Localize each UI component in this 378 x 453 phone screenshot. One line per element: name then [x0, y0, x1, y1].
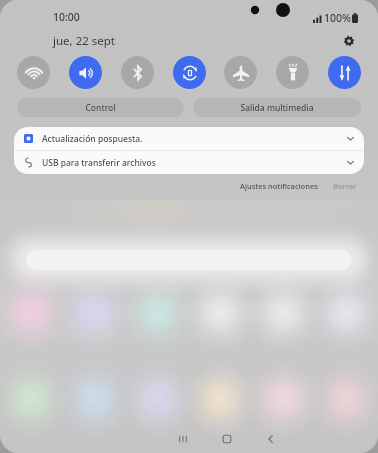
- button[interactable]: Recents: [166, 426, 200, 452]
- staticText: Borrar: [333, 181, 357, 191]
- button[interactable]: Bluetooth: [121, 56, 154, 89]
- button[interactable]: Control: [17, 98, 184, 117]
- staticText: 10:00: [53, 10, 80, 24]
- staticText: Actualización pospuesta.: [42, 133, 346, 145]
- staticText: Salida multimedia: [240, 102, 314, 114]
- staticText: Ajustes notificaciones: [240, 181, 318, 191]
- button[interactable]: Flashlight: [276, 56, 309, 89]
- button[interactable]: Ajustes notificaciones: [237, 179, 321, 193]
- button[interactable]: Mobile data: [328, 56, 361, 89]
- button[interactable]: Sound: [69, 56, 102, 89]
- button[interactable]: Salida multimedia: [193, 98, 361, 117]
- button[interactable]: Wi-Fi: [17, 56, 50, 89]
- button[interactable]: Auto rotate: [173, 56, 206, 89]
- button[interactable]: Airplane mode: [224, 56, 257, 89]
- staticText: 100%: [324, 11, 351, 25]
- staticText: jue, 22 sept: [53, 33, 115, 49]
- staticText: Control: [85, 102, 116, 114]
- button[interactable]: Home: [210, 426, 244, 452]
- button[interactable]: Settings: [338, 30, 360, 52]
- staticText: USB para transferir archivos: [42, 157, 346, 169]
- button[interactable]: USB para transferir archivos: [14, 151, 364, 174]
- button[interactable]: Back: [254, 426, 288, 452]
- button[interactable]: Borrar: [330, 179, 360, 193]
- button[interactable]: Actualización pospuesta.: [14, 127, 364, 150]
